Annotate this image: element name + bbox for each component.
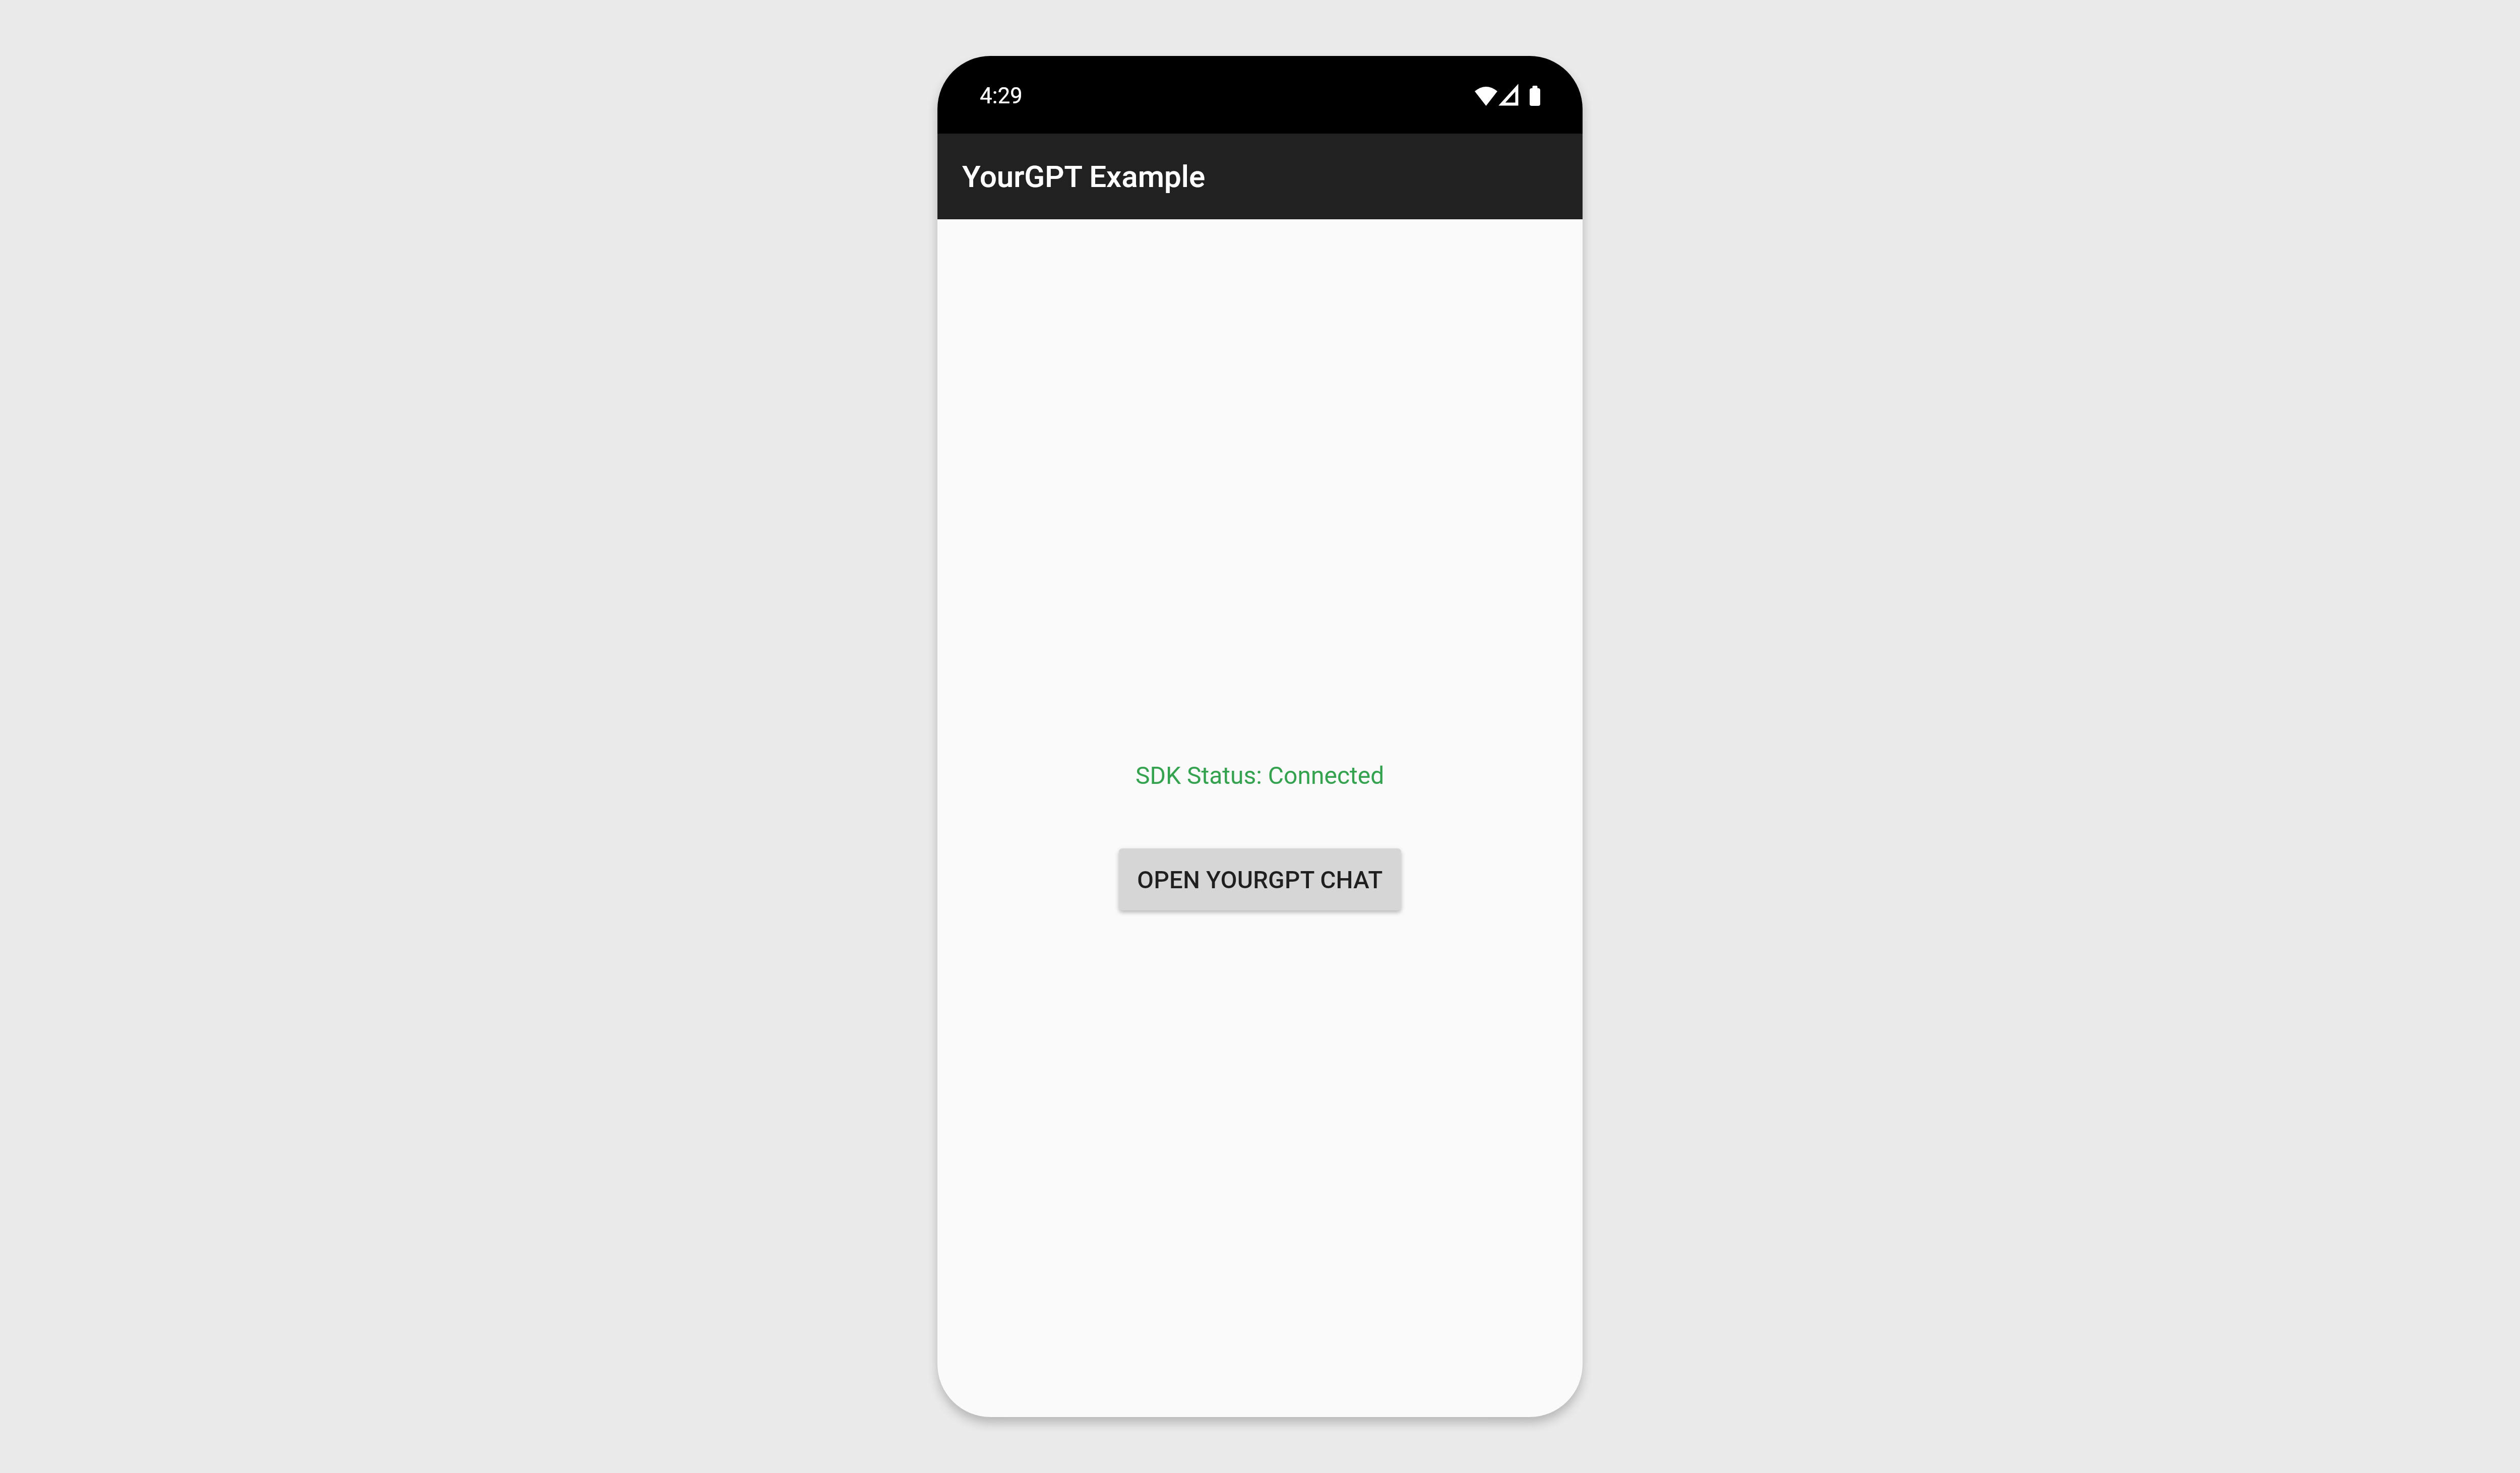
staticText: 4:29 — [980, 83, 1023, 109]
staticText: OPEN YOURGPT CHAT — [1137, 866, 1383, 894]
staticText: SDK Status: Connected — [1136, 761, 1384, 789]
staticText: YourGPT Example — [962, 159, 1206, 194]
button[interactable]: OPEN YOURGPT CHAT — [1119, 848, 1401, 910]
